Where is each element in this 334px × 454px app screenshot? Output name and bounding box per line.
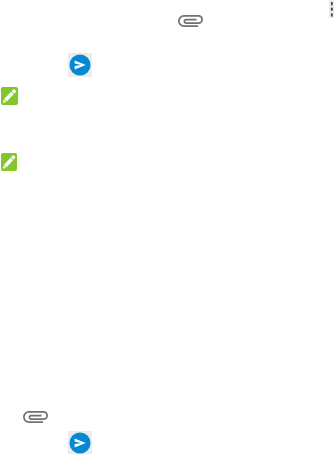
button[interactable]: Edit xyxy=(1,153,17,171)
button[interactable]: Attach xyxy=(178,15,203,27)
button[interactable]: Send xyxy=(68,53,92,77)
button[interactable]: More options xyxy=(329,0,334,18)
button[interactable]: Attach file xyxy=(23,411,48,423)
button[interactable]: Edit xyxy=(1,87,18,105)
button[interactable]: Send xyxy=(68,431,92,454)
